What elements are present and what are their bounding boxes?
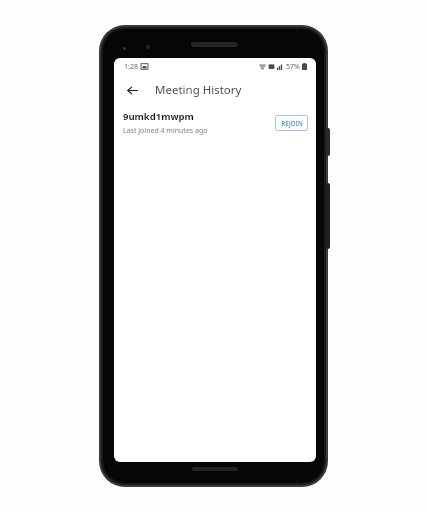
button[interactable]: REJOIN bbox=[275, 115, 308, 131]
staticText: Meeting History bbox=[155, 82, 242, 98]
staticText: REJOIN bbox=[281, 119, 303, 127]
staticText: 9umkd1mwpm bbox=[123, 110, 194, 123]
button[interactable]: Back bbox=[121, 79, 143, 101]
staticText: 1:28 bbox=[124, 62, 138, 72]
staticText: Last joined 4 minutes ago bbox=[123, 126, 208, 136]
staticText: 57% bbox=[286, 62, 300, 72]
button[interactable]: 9umkd1mwpm bbox=[114, 105, 316, 141]
